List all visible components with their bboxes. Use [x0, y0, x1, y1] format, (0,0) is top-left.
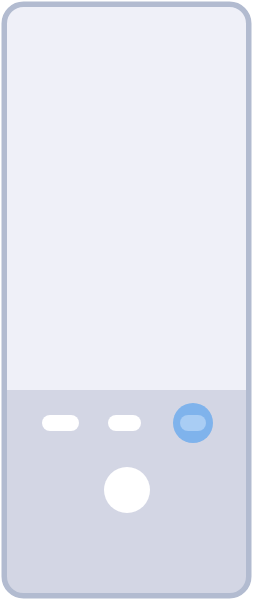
button[interactable]: Secondary action — [108, 415, 141, 431]
button[interactable]: Primary action — [42, 415, 79, 431]
button[interactable]: Main action — [104, 467, 150, 513]
button[interactable]: Accent control — [173, 403, 213, 443]
